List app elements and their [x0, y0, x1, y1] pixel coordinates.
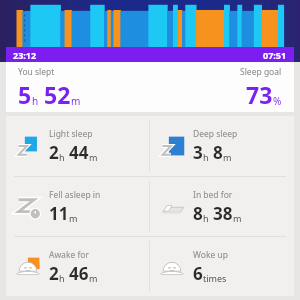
staticText: m	[89, 151, 98, 163]
staticText: m	[233, 212, 242, 224]
button[interactable]: Times woken up	[150, 237, 294, 296]
staticText: 8	[193, 202, 203, 225]
staticText: times	[203, 272, 227, 284]
staticText: You slept	[18, 66, 55, 78]
staticText: Light sleep	[49, 128, 93, 140]
staticText: 3	[193, 141, 203, 164]
staticText: 73	[246, 79, 273, 110]
staticText: Sleep goal	[240, 66, 282, 78]
other: Sleep stage	[160, 133, 186, 159]
staticText: 23:12	[13, 49, 37, 61]
button[interactable]: Sleep stage	[150, 116, 294, 176]
staticText: m	[69, 212, 78, 224]
staticText: h	[32, 94, 39, 108]
staticText: 11	[49, 202, 69, 225]
staticText: Woke up	[193, 249, 228, 261]
staticText: In bed for	[193, 189, 233, 201]
staticText: 8	[213, 141, 223, 164]
button[interactable]: Awake time	[6, 237, 149, 296]
staticText: 38	[213, 202, 233, 225]
button[interactable]: Time in bed	[150, 177, 294, 236]
staticText: m	[71, 94, 81, 108]
staticText: Fell asleep in	[49, 189, 101, 201]
staticText: h	[59, 151, 65, 163]
button[interactable]: Time to fall asleep	[6, 177, 149, 236]
button[interactable]: You slept	[6, 62, 294, 112]
other: Time in bed	[160, 194, 186, 220]
staticText: 2	[49, 262, 59, 285]
staticText: Awake for	[49, 249, 90, 261]
other: Sleep stages graph	[0, 0, 300, 48]
staticText: 46	[69, 262, 89, 285]
staticText: 5	[18, 79, 32, 110]
other: Awake time	[16, 254, 42, 280]
staticText: 07:51	[263, 49, 287, 61]
staticText: 52	[44, 79, 71, 110]
staticText: 44	[69, 141, 89, 164]
button[interactable]: Sleep stages graph	[0, 0, 300, 62]
staticText: h	[203, 151, 209, 163]
other: Times woken up	[160, 254, 186, 280]
staticText: m	[223, 151, 232, 163]
staticText: Deep sleep	[193, 128, 238, 140]
staticText: h	[59, 272, 65, 284]
staticText: m	[89, 272, 98, 284]
button[interactable]: Sleep stage	[6, 116, 149, 176]
other: Time to fall asleep	[16, 194, 42, 220]
staticText: %	[273, 94, 282, 108]
staticText: 6	[193, 262, 203, 285]
other: Sleep stage	[16, 133, 42, 159]
staticText: h	[203, 212, 209, 224]
staticText: 2	[49, 141, 59, 164]
